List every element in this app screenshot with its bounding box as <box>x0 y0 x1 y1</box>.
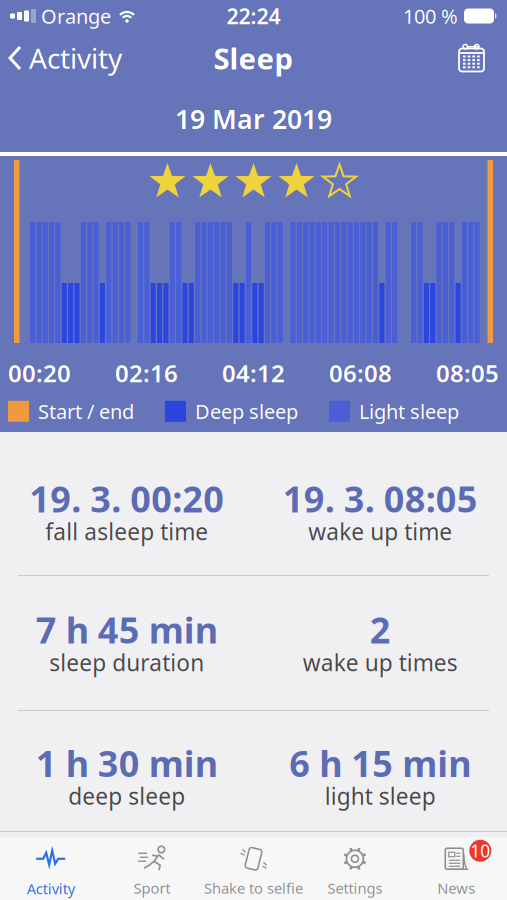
staticText: 6 h 15 min <box>289 739 471 787</box>
staticText: Start / end <box>38 398 134 425</box>
staticText: Orange <box>41 3 111 29</box>
staticText: 1 h 30 min <box>36 739 218 787</box>
button[interactable]: Shake to selfie <box>203 840 304 898</box>
staticText: wake up times <box>303 647 458 677</box>
staticText: 100 % <box>403 3 458 29</box>
staticText: 7 h 45 min <box>36 605 218 653</box>
staticText: 19 Mar 2019 <box>175 101 332 136</box>
staticText: 06:08 <box>329 357 392 389</box>
staticText: deep sleep <box>68 781 185 811</box>
button[interactable] <box>458 44 507 71</box>
staticText: News <box>437 878 475 898</box>
staticText: Activity <box>29 39 122 77</box>
button[interactable]: Settings <box>304 840 406 898</box>
staticText: Shake to selfie <box>204 878 303 898</box>
button[interactable]: Activity <box>0 39 122 77</box>
staticText: Sleep <box>213 38 293 77</box>
button[interactable]: Activity <box>0 840 101 898</box>
staticText: Sport <box>134 878 171 898</box>
button[interactable]: News <box>406 840 507 898</box>
staticText: light sleep <box>325 781 436 811</box>
staticText: Deep sleep <box>195 398 298 425</box>
staticText: 2 <box>370 605 391 653</box>
staticText: Light sleep <box>359 398 459 425</box>
staticText: 02:16 <box>115 357 178 389</box>
staticText: 08:05 <box>436 357 499 389</box>
staticText: wake up time <box>308 516 452 546</box>
staticText: 10 <box>470 839 490 862</box>
staticText: 19. 3. 00:20 <box>29 474 224 522</box>
staticText: 22:24 <box>226 2 280 30</box>
button[interactable]: Sport <box>101 840 203 898</box>
staticText: Settings <box>327 878 382 898</box>
staticText: 19. 3. 08:05 <box>283 474 478 522</box>
staticText: fall asleep time <box>45 516 208 546</box>
staticText: 00:20 <box>8 357 71 389</box>
staticText: 04:12 <box>222 357 285 389</box>
staticText: sleep duration <box>49 647 204 677</box>
staticText: Activity <box>27 879 75 898</box>
